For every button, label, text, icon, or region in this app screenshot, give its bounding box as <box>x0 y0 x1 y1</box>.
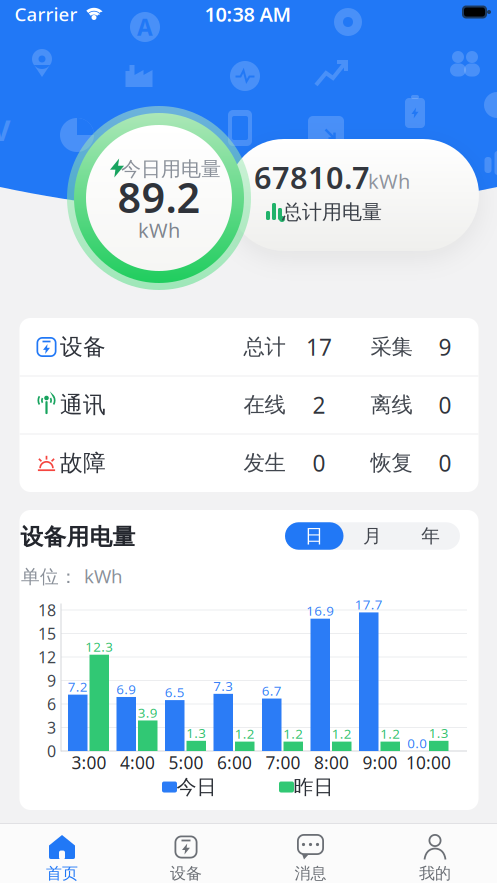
staticText: 0 <box>47 740 56 762</box>
staticText: 通讯 <box>60 391 106 419</box>
staticText: 0.0 <box>407 734 427 752</box>
staticText: 17.7 <box>355 596 383 613</box>
staticText: 67810.7 <box>254 157 370 197</box>
staticText: 日 <box>305 524 324 547</box>
staticText: 6.5 <box>165 683 185 701</box>
staticText: 1.2 <box>283 725 303 742</box>
staticText: 今日 <box>176 775 216 799</box>
staticText: 9 <box>438 332 451 362</box>
staticText: 1.2 <box>235 725 255 742</box>
staticText: 月 <box>363 524 382 547</box>
staticText: V <box>0 110 10 149</box>
staticText: 2 <box>312 390 325 420</box>
staticText: 16.9 <box>306 602 334 619</box>
staticText: 0 <box>312 448 325 478</box>
staticText: 3:00 <box>71 751 106 774</box>
staticText: 6:00 <box>217 751 252 774</box>
staticText: 设备 <box>170 864 202 883</box>
staticText: 17 <box>306 332 332 362</box>
button[interactable]: 设备 <box>131 824 241 883</box>
staticText: 在线 <box>243 392 285 418</box>
staticText: 恢复 <box>370 450 412 476</box>
staticText: 发生 <box>243 450 285 476</box>
staticText: 总计用电量 <box>282 200 382 224</box>
staticText: 故障 <box>60 449 106 477</box>
staticText: 设备 <box>60 333 106 361</box>
button[interactable]: 故障 <box>19 434 478 492</box>
staticText: 1.2 <box>332 725 352 742</box>
staticText: 0 <box>438 448 451 478</box>
button[interactable]: 首页 <box>7 824 117 883</box>
staticText: 1.3 <box>186 724 206 742</box>
staticText: 总计 <box>243 334 285 360</box>
staticText: 3.9 <box>138 704 158 721</box>
staticText: 离线 <box>370 392 412 418</box>
staticText: 6.7 <box>262 682 282 699</box>
staticText: 昨日 <box>293 775 333 799</box>
staticText: 年 <box>421 524 440 547</box>
button[interactable]: 我的 <box>380 824 490 883</box>
staticText: 0 <box>438 390 451 420</box>
staticText: 消息 <box>294 864 326 883</box>
button[interactable]: 月 <box>343 522 402 550</box>
staticText: 6.9 <box>116 680 136 698</box>
staticText: 今日用电量 <box>121 157 221 181</box>
staticText: 10:00 <box>406 751 451 774</box>
button[interactable]: 通讯 <box>19 376 478 434</box>
staticText: 1.2 <box>380 725 400 742</box>
staticText: 3 <box>47 717 56 738</box>
staticText: 1.3 <box>429 724 449 742</box>
staticText: 15 <box>38 623 56 644</box>
staticText: 9 <box>47 670 56 691</box>
staticText: 6 <box>47 693 56 715</box>
button[interactable]: 年 <box>401 522 460 550</box>
staticText: 首页 <box>46 864 78 883</box>
staticText: 单位： kWh <box>21 564 123 588</box>
staticText: Carrier <box>14 2 77 26</box>
staticText: 7.3 <box>213 677 233 695</box>
staticText: 我的 <box>419 864 451 883</box>
staticText: 4:00 <box>120 751 155 774</box>
staticText: 7:00 <box>265 751 300 774</box>
staticText: 设备用电量 <box>20 523 135 551</box>
staticText: A <box>137 12 153 42</box>
staticText: 8:00 <box>314 751 349 774</box>
staticText: kWh <box>368 168 410 194</box>
staticText: 12.3 <box>85 638 113 655</box>
staticText: 采集 <box>370 334 412 360</box>
button[interactable]: 消息 <box>255 824 365 883</box>
button[interactable]: 日 <box>285 522 343 550</box>
staticText: 10:38 AM <box>204 1 291 27</box>
staticText: 7.2 <box>68 678 88 695</box>
staticText: 12 <box>38 646 56 668</box>
staticText: 18 <box>38 599 56 621</box>
staticText: kWh <box>138 217 180 243</box>
button[interactable]: 设备 <box>19 318 478 376</box>
staticText: 89.2 <box>117 170 200 224</box>
staticText: 9:00 <box>362 751 397 774</box>
staticText: 5:00 <box>168 751 203 774</box>
